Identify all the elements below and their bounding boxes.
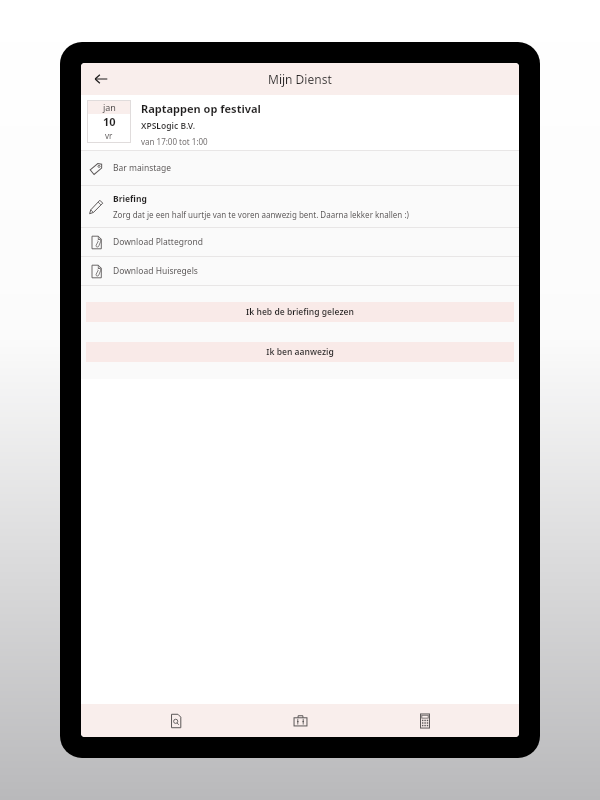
staticText: XPSLogic B.V.: [141, 120, 196, 132]
staticText: Download Plattegrond: [113, 236, 203, 248]
button[interactable]: Bar mainstage: [81, 151, 519, 185]
staticText: van 17:00 tot 1:00: [141, 136, 208, 147]
staticText: Raptappen op festival: [141, 101, 261, 116]
button[interactable]: Download Huisregels: [81, 257, 519, 285]
button[interactable]: Shifts: [270, 704, 330, 737]
staticText: Briefing: [113, 193, 147, 205]
staticText: Download Huisregels: [113, 265, 198, 277]
staticText: jan: [103, 101, 116, 113]
button[interactable]: Ik ben aanwezig: [86, 342, 514, 362]
button[interactable]: Briefing: [81, 186, 519, 227]
button[interactable]: Back: [86, 64, 116, 94]
staticText: Ik ben aanwezig: [266, 346, 334, 358]
staticText: 10: [103, 114, 116, 129]
button[interactable]: Ik heb de briefing gelezen: [86, 302, 514, 322]
staticText: Mijn Dienst: [268, 71, 332, 87]
button[interactable]: Calculator: [395, 704, 455, 737]
staticText: Ik heb de briefing gelezen: [246, 306, 354, 318]
button[interactable]: Download Plattegrond: [81, 228, 519, 256]
staticText: Zorg dat je een half uurtje van te voren…: [113, 209, 409, 220]
staticText: vr: [105, 130, 113, 141]
button[interactable]: Documents: [146, 704, 206, 737]
staticText: Bar mainstage: [113, 162, 172, 174]
